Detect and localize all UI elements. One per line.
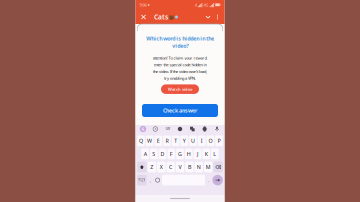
button[interactable]: U — [189, 135, 197, 146]
staticText: G — [141, 126, 144, 132]
button[interactable]: A — [141, 149, 149, 159]
staticText: E — [157, 137, 160, 144]
staticText: R — [165, 137, 168, 144]
button[interactable]: Close — [138, 10, 149, 24]
staticText: attention! To claim your reward, — [152, 55, 207, 60]
staticText: J — [197, 150, 198, 157]
staticText: O — [208, 137, 212, 144]
button[interactable]: Watch video — [161, 84, 199, 94]
button[interactable]: G — [176, 149, 184, 159]
button[interactable]: Enter — [212, 175, 223, 185]
staticText: S — [152, 150, 155, 157]
button[interactable]: V — [176, 162, 184, 172]
button[interactable]: I — [198, 135, 206, 146]
staticText: . — [208, 177, 209, 183]
staticText: ?123 — [138, 178, 145, 182]
button[interactable]: B — [185, 162, 194, 172]
staticText: enter the special code hidden in — [153, 62, 206, 67]
button[interactable]: H — [185, 149, 193, 159]
staticText: the video. If the video won't load, — [153, 69, 207, 74]
button[interactable]: X — [157, 162, 165, 172]
staticText: 9:06 — [139, 2, 146, 8]
staticText: Watch video — [168, 86, 192, 92]
staticText: D — [161, 150, 165, 157]
button[interactable]: Backspace — [213, 162, 223, 172]
staticText: Y — [183, 137, 186, 144]
staticText: , — [150, 177, 151, 183]
staticText: GIF — [166, 127, 170, 131]
staticText: A — [144, 150, 147, 157]
staticText: 4G — [203, 2, 208, 8]
button[interactable]: Expand — [203, 10, 213, 24]
staticText: I — [201, 137, 203, 144]
staticText — [180, 165, 186, 195]
button[interactable]: Stickers — [175, 124, 184, 134]
staticText: P — [218, 137, 221, 144]
staticText: W — [147, 137, 152, 144]
button[interactable]: K — [202, 149, 210, 159]
button[interactable]: M — [204, 162, 212, 172]
staticText: Cats — [154, 13, 168, 21]
button[interactable]: C — [166, 162, 175, 172]
staticText: N — [197, 163, 201, 171]
button[interactable]: R — [163, 135, 171, 146]
staticText: try enabling a VPN. — [164, 76, 196, 81]
staticText: M — [206, 163, 211, 171]
staticText: B — [188, 163, 191, 171]
button[interactable]: P — [215, 135, 223, 146]
staticText: U — [191, 137, 195, 144]
staticText: 4 — [195, 2, 197, 8]
button[interactable]: Translate — [188, 124, 197, 134]
button[interactable]: E — [154, 135, 162, 146]
button[interactable]: J — [194, 149, 201, 159]
button[interactable]: T — [172, 135, 179, 146]
staticText: Z — [150, 163, 153, 171]
staticText: F — [170, 150, 173, 157]
button[interactable]: Clipboard — [151, 124, 160, 134]
button[interactable]: W — [146, 135, 153, 146]
button[interactable]: GIF — [163, 124, 172, 134]
staticText: G — [178, 150, 182, 157]
button[interactable]: D — [159, 149, 166, 159]
button[interactable]: Emoji — [154, 175, 161, 185]
staticText: H — [187, 150, 191, 157]
button[interactable]: O — [206, 135, 214, 146]
button[interactable]: Period — [206, 175, 211, 185]
button[interactable]: Check answer — [142, 104, 218, 117]
button[interactable]: Shift — [137, 162, 147, 172]
staticText: T — [174, 137, 177, 144]
staticText: C — [169, 163, 172, 171]
button[interactable]: Settings — [200, 124, 209, 134]
button[interactable]: F — [167, 149, 175, 159]
button[interactable]: S — [150, 149, 158, 159]
staticText: L — [213, 150, 216, 157]
button[interactable]: Q — [137, 135, 145, 146]
button[interactable]: Y — [180, 135, 188, 146]
button[interactable]: Google search — [138, 124, 147, 134]
button[interactable]: Comma — [148, 175, 153, 185]
button[interactable]: More options — [213, 10, 222, 24]
button[interactable]: Voice input — [212, 124, 221, 134]
staticText: Q — [139, 137, 143, 144]
staticText: Check answer — [163, 107, 197, 114]
staticText: X — [160, 163, 163, 171]
staticText: K — [205, 150, 208, 157]
button[interactable]: ?123 — [137, 175, 147, 185]
button[interactable]: N — [195, 162, 203, 172]
staticText: V — [178, 163, 181, 171]
button[interactable]: L — [211, 149, 219, 159]
button[interactable]: Z — [148, 162, 156, 172]
staticText: Which word is hidden in the video? — [146, 35, 214, 49]
